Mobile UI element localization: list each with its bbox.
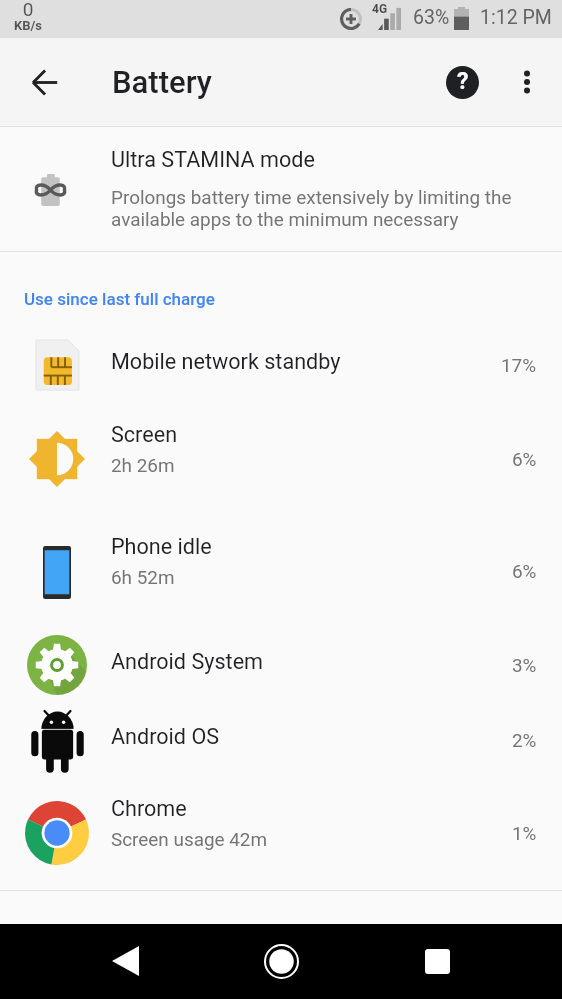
staticText: Android OS [111, 724, 220, 749]
staticText: Prolongs battery time extensively by lim… [111, 186, 512, 230]
staticText: 4G [372, 2, 388, 16]
staticText: 17% [501, 354, 537, 376]
staticText: 6h 52m [111, 566, 175, 588]
button[interactable]: Back [20, 58, 68, 106]
staticText: ? [457, 68, 469, 95]
staticText: Screen [111, 422, 178, 447]
button[interactable]: Home [253, 933, 309, 989]
staticText: 2% [512, 729, 537, 751]
button[interactable]: Chrome [0, 783, 562, 858]
staticText: 0 [8, 0, 48, 20]
button[interactable]: Back [97, 933, 153, 989]
button[interactable]: Mobile network standby [0, 329, 562, 394]
button[interactable]: Phone idle [0, 521, 562, 596]
staticText: Ultra STAMINA mode [111, 147, 315, 172]
staticText: 2h 26m [111, 454, 175, 476]
staticText: 6% [512, 560, 537, 582]
staticText: 1:12 PM [480, 6, 552, 29]
staticText: Android System [111, 649, 264, 674]
button[interactable]: Recents [409, 933, 465, 989]
staticText: Chrome [111, 796, 187, 821]
staticText: KB/s [8, 18, 48, 33]
staticText: 3% [512, 654, 537, 676]
staticText: Mobile network standby [111, 349, 341, 374]
button[interactable]: Screen [0, 409, 562, 484]
staticText: Battery [112, 64, 212, 100]
button[interactable]: Android OS [0, 699, 562, 774]
button[interactable]: Android System [0, 624, 562, 699]
staticText: Use since last full charge [24, 289, 215, 309]
staticText: Screen usage 42m [111, 828, 268, 850]
staticText: 6% [512, 448, 537, 470]
button[interactable]: More options [505, 60, 549, 104]
staticText: 63% [413, 6, 450, 29]
button[interactable]: Help [440, 60, 484, 104]
button[interactable]: Ultra STAMINA mode [0, 127, 562, 251]
staticText: 1% [512, 822, 537, 844]
staticText: Phone idle [111, 534, 212, 559]
